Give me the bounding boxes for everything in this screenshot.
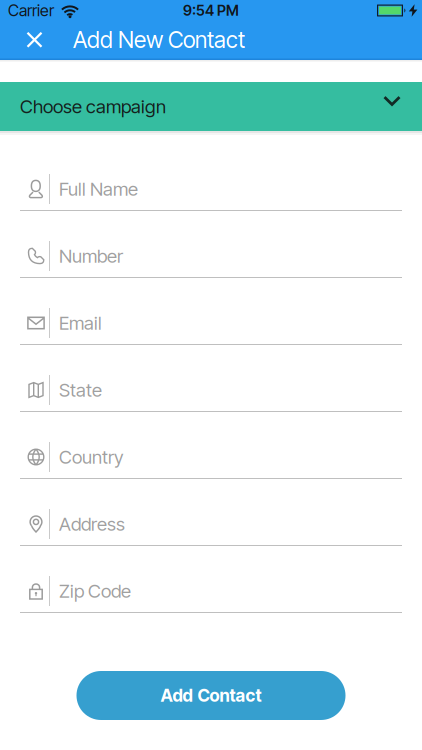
staticText: Zip Code [59,580,131,602]
button[interactable]: Add [76,671,345,720]
staticText: Email [59,312,102,334]
staticText: State [59,379,102,401]
button[interactable]: Choose campaign [0,82,422,131]
button[interactable]: Email [0,278,422,345]
staticText: Choose campaign [20,95,166,117]
staticText: Add New Contact [73,26,245,53]
staticText: Contact [197,685,261,706]
button[interactable]: Country [0,412,422,479]
staticText: Country [59,446,124,468]
staticText: Address [59,513,125,535]
staticText: Add [160,685,192,706]
staticText: Number [59,245,123,267]
button[interactable]: Close [26,31,43,48]
staticText: 9:54 PM [183,2,239,19]
button[interactable]: Number [0,211,422,278]
button[interactable]: Zip Code [0,546,422,613]
staticText: Full Name [59,178,138,200]
button[interactable]: State [0,345,422,412]
button[interactable]: Full Name [0,144,422,211]
button[interactable]: Address [0,479,422,546]
staticText: Carrier [8,1,54,20]
